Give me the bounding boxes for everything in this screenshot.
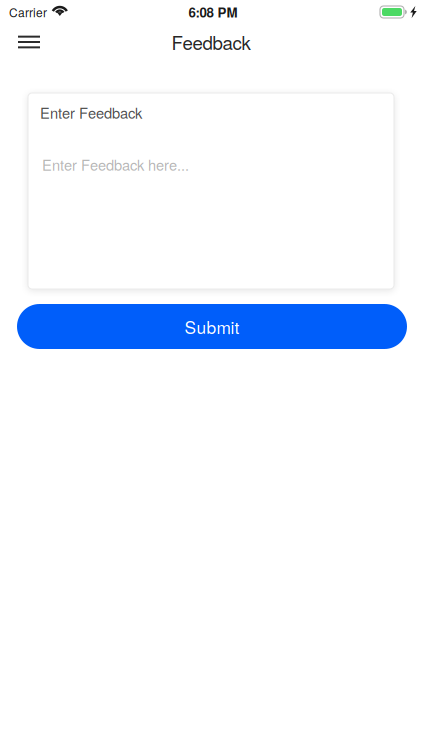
staticText: Submit [184,314,239,339]
staticText: Enter Feedback here... [42,154,189,175]
button[interactable]: Menu [0,25,54,59]
staticText: Enter Feedback [40,102,142,123]
staticText: 6:08 PM [188,2,237,22]
staticText: Feedback [171,29,250,55]
button[interactable]: Submit [17,304,407,349]
staticText: Carrier [9,3,47,21]
